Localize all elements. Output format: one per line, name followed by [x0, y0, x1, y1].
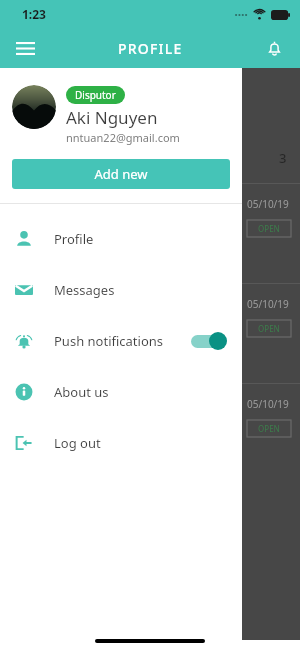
button[interactable]: Profile photo [12, 85, 56, 129]
staticText: OPEN [258, 423, 280, 434]
button[interactable]: Log out [0, 417, 242, 468]
staticText: Messages [54, 281, 115, 299]
staticText: 3 [279, 149, 287, 167]
staticText: About us [54, 383, 109, 401]
staticText: Aki Nguyen [66, 106, 158, 129]
staticText: PROFILE [118, 39, 183, 58]
button[interactable]: Messages [0, 264, 242, 315]
button[interactable]: About us [0, 366, 242, 417]
button[interactable]: Profile [0, 213, 242, 264]
button[interactable]: Open navigation menu [8, 31, 42, 65]
staticText: Add new [94, 165, 148, 183]
staticText: nntuan22@gmail.com [66, 130, 180, 145]
staticText: 05/10/19 [247, 297, 289, 311]
staticText: 1:23 [22, 6, 46, 22]
button[interactable]: Disputor [66, 86, 125, 104]
staticText: 05/10/19 [247, 197, 289, 211]
button[interactable]: Push notifications toggle [188, 330, 228, 352]
staticText: OPEN [258, 323, 280, 334]
staticText: OPEN [258, 223, 280, 234]
button[interactable]: Push notifications [0, 315, 242, 366]
staticText: Disputor [75, 88, 116, 102]
staticText: Log out [54, 434, 101, 452]
button[interactable]: Notifications [257, 31, 291, 65]
staticText: 05/10/19 [247, 397, 289, 411]
button[interactable]: Add new [12, 159, 230, 189]
staticText: Profile [54, 230, 94, 248]
staticText: Push notifications [54, 332, 164, 350]
